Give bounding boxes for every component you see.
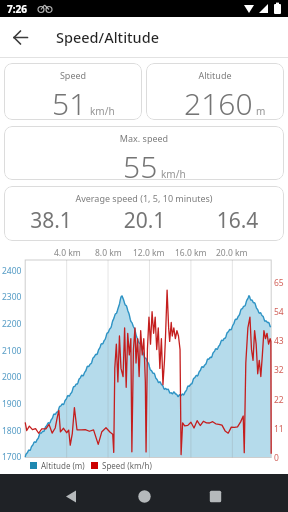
staticText: km/h: [161, 167, 186, 180]
staticText: Speed/Altitude: [56, 27, 160, 47]
staticText: 1800: [2, 425, 22, 437]
staticText: Speed (km/h): [102, 460, 152, 471]
staticText: 4.0 km: [54, 247, 81, 259]
button[interactable]: Max. speed: [4, 126, 284, 180]
staticText: 2100: [2, 345, 22, 357]
staticText: 43: [274, 335, 284, 347]
staticText: Speed: [4, 69, 142, 81]
staticText: 65: [274, 277, 284, 289]
staticText: 2200: [2, 318, 22, 330]
staticText: 38.1: [4, 206, 98, 235]
staticText: Altitude (m): [41, 460, 85, 471]
staticText: 22: [274, 394, 284, 406]
staticText: 12.0 km: [133, 247, 165, 259]
staticText: 16.0 km: [175, 247, 207, 259]
staticText: Altitude: [146, 69, 284, 81]
button[interactable]: Speed: [4, 63, 142, 120]
staticText: Max. speed: [4, 132, 284, 144]
staticText: 11: [274, 423, 284, 435]
button[interactable]: [6, 23, 36, 53]
button[interactable]: [200, 481, 230, 511]
button[interactable]: [129, 481, 159, 511]
staticText: 1700: [2, 451, 22, 463]
staticText: 2000: [2, 371, 22, 383]
staticText: 32: [274, 364, 284, 376]
staticText: 54: [274, 306, 284, 318]
staticText: 2400: [2, 265, 22, 277]
staticText: 20.0 km: [216, 247, 248, 259]
button[interactable]: Altitude: [146, 63, 284, 120]
staticText: 55: [123, 146, 158, 180]
staticText: 2300: [2, 291, 22, 303]
staticText: 20.1: [98, 206, 191, 235]
staticText: 16.4: [191, 206, 284, 235]
staticText: 51: [52, 83, 87, 120]
staticText: 0: [274, 452, 279, 464]
staticText: m: [256, 104, 266, 118]
staticText: km/h: [90, 104, 115, 118]
button[interactable]: Average speed (1, 5, 10 minutes): [4, 186, 284, 241]
button[interactable]: [56, 481, 86, 511]
staticText: 2160: [184, 83, 253, 120]
staticText: 8.0 km: [95, 247, 122, 259]
staticText: Average speed (1, 5, 10 minutes): [4, 192, 284, 204]
staticText: 1900: [2, 398, 22, 410]
staticText: 7:26: [7, 2, 27, 16]
